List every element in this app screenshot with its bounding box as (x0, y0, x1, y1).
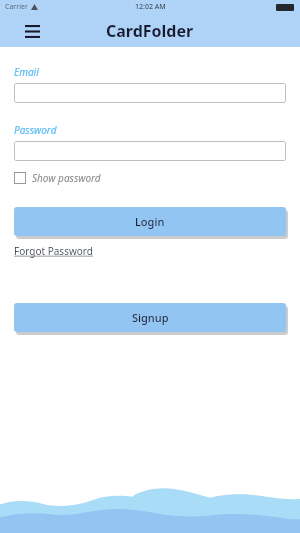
button[interactable]: Show password (14, 171, 101, 185)
staticText: CardFolder (106, 20, 194, 42)
staticText: Show password (32, 171, 101, 185)
button[interactable] (14, 141, 286, 161)
button[interactable]: Signup (14, 303, 286, 332)
staticText: Email (14, 65, 39, 79)
staticText: Signup (132, 310, 169, 325)
button[interactable]: Menu (18, 17, 46, 45)
staticText: Password (14, 123, 57, 137)
button[interactable] (14, 83, 286, 103)
staticText: Carrier (5, 2, 28, 12)
button[interactable]: Login (14, 207, 286, 236)
staticText: 12:02 AM (135, 2, 166, 12)
button[interactable]: Forgot Password (14, 244, 93, 258)
staticText: Login (135, 214, 165, 229)
